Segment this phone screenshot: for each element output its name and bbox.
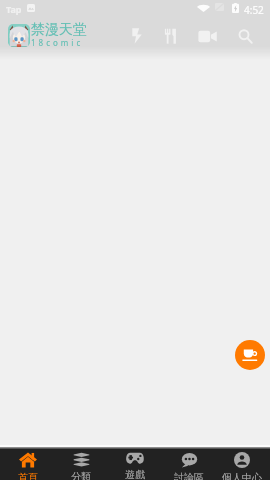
- staticText: 分類: [71, 470, 91, 480]
- button[interactable]: Food: [159, 25, 181, 47]
- staticText: 4:52: [244, 3, 264, 17]
- button[interactable]: 個人中心: [216, 450, 268, 480]
- staticText: 討論區: [174, 471, 204, 480]
- button[interactable]: Video: [196, 25, 218, 47]
- staticText: 遊戲: [125, 468, 145, 480]
- staticText: 個人中心: [222, 471, 262, 480]
- button[interactable]: 分類: [55, 450, 107, 480]
- staticText: 禁漫天堂: [31, 21, 87, 39]
- button[interactable]: Coffee: [235, 340, 265, 370]
- staticText: 首頁: [18, 471, 38, 480]
- button[interactable]: Flash: [126, 25, 148, 47]
- staticText: Tap: [6, 3, 22, 15]
- button[interactable]: 討論區: [163, 450, 215, 480]
- button[interactable]: 遊戲: [109, 450, 161, 480]
- button[interactable]: Search: [234, 25, 256, 47]
- staticText: 18comic: [31, 37, 84, 48]
- button[interactable]: 首頁: [2, 450, 54, 480]
